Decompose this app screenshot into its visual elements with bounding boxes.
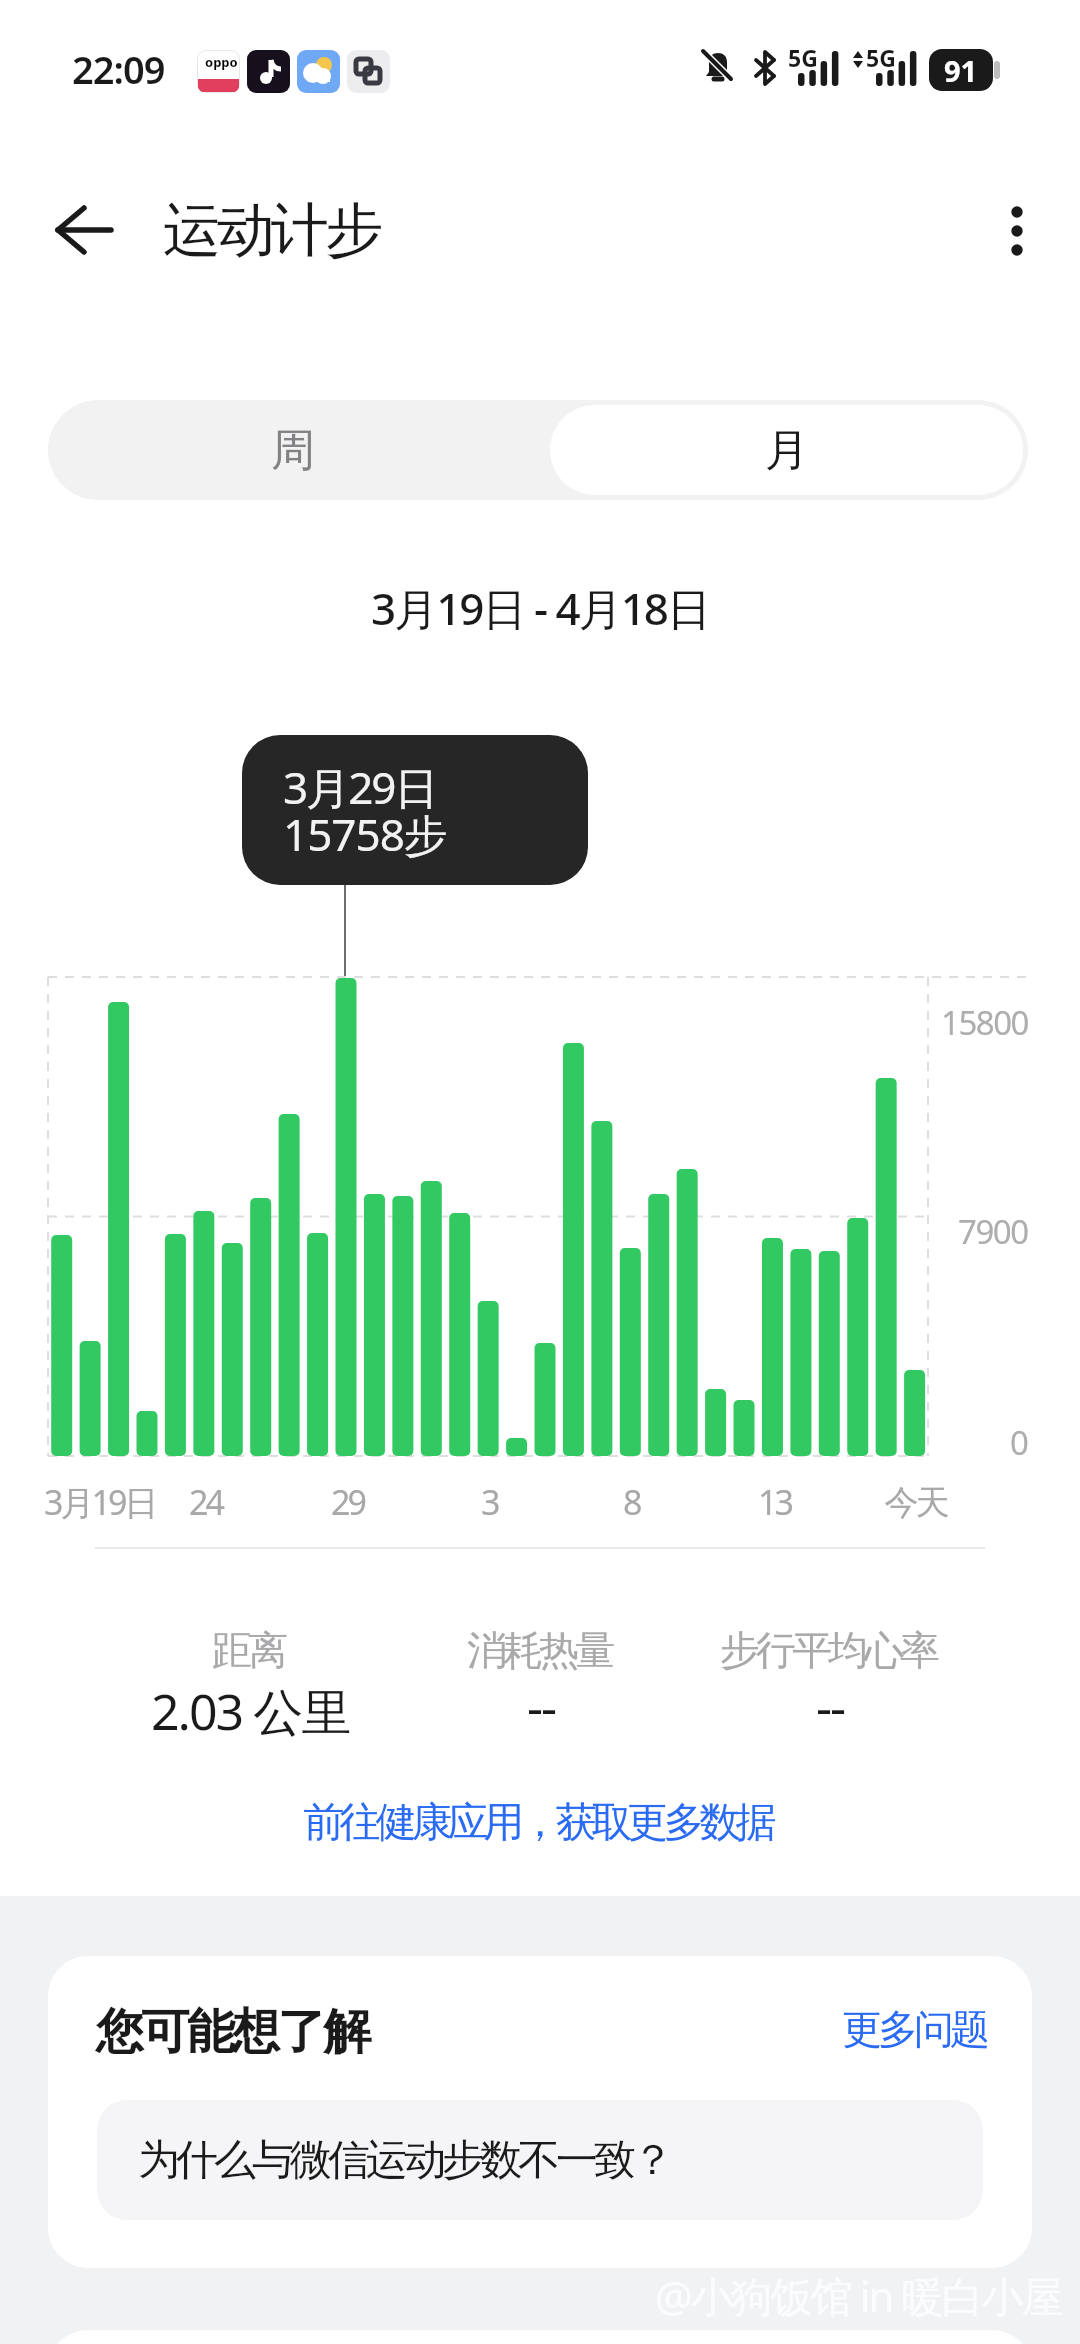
staticText: 3月29日 <box>283 757 437 817</box>
staticText: 2.03 公里 <box>151 1677 350 1745</box>
staticText: oppo <box>205 53 238 71</box>
staticText: 今天 <box>886 1481 948 1524</box>
staticText: 距离 <box>214 1625 286 1675</box>
staticText: 15758步 <box>283 804 447 864</box>
staticText: 8 <box>623 1479 640 1525</box>
button[interactable] <box>998 200 1036 262</box>
staticText: 消耗热量 <box>469 1625 613 1675</box>
staticText: 步行平均心率 <box>722 1625 938 1675</box>
staticText: 5G <box>788 42 818 73</box>
staticText: 3 <box>481 1479 498 1525</box>
staticText: 29 <box>331 1479 364 1525</box>
staticText: 0 <box>1010 1420 1028 1465</box>
button[interactable] <box>57 207 113 253</box>
button[interactable]: 更多问题 <box>844 2004 988 2054</box>
staticText: 3月19日 <box>44 1479 156 1525</box>
staticText: 13 <box>758 1479 791 1525</box>
staticText: @小狗饭馆 in 暖白小屋 <box>655 2267 1062 2324</box>
staticText: 7900 <box>958 1209 1028 1254</box>
staticText: 3月19日 - 4月18日 <box>371 578 710 638</box>
staticText: -- <box>527 1672 556 1740</box>
staticText: 22:09 <box>72 43 165 95</box>
staticText: 91 <box>944 51 978 90</box>
staticText: 更多问题 <box>844 2004 988 2054</box>
button[interactable]: 周 <box>48 400 538 500</box>
staticText: 15800 <box>941 1000 1028 1045</box>
staticText: -- <box>816 1672 845 1740</box>
staticText: 周 <box>271 423 315 478</box>
staticText: 5G <box>866 42 896 73</box>
staticText: 月 <box>765 423 809 478</box>
staticText: 运动计步 <box>165 194 381 267</box>
button[interactable]: 为什么与微信运动步数不一致？ <box>97 2100 983 2220</box>
staticText: 您可能想了解 <box>97 2002 370 2062</box>
staticText: 24 <box>189 1479 222 1525</box>
button[interactable]: 前往健康应用，获取更多数据 <box>240 1790 840 1856</box>
staticText: 为什么与微信运动步数不一致？ <box>140 2134 672 2187</box>
staticText: 前往健康应用，获取更多数据 <box>306 1797 774 1849</box>
button[interactable]: 月 <box>550 405 1023 495</box>
